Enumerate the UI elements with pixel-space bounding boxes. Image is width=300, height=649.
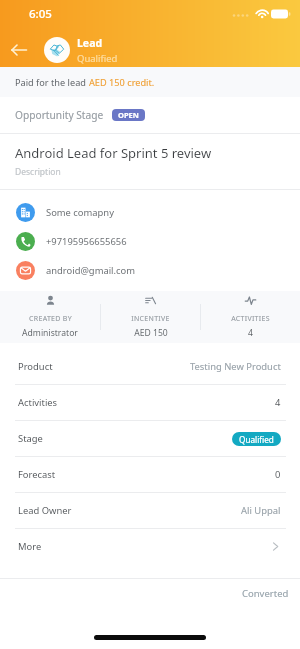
staticText: 4: [248, 327, 253, 339]
staticText: Testing New Product: [190, 360, 281, 373]
staticText: 4: [275, 396, 281, 409]
staticText: Some comapny: [46, 206, 114, 219]
button[interactable]: android@gmail.com: [0, 256, 300, 285]
staticText: Description: [15, 166, 61, 178]
button[interactable]: CREATED BY: [0, 291, 100, 343]
staticText: ACTIVITIES: [231, 314, 270, 324]
staticText: Android Lead for Sprint 5 review: [15, 144, 212, 162]
staticText: Ali Uppal: [241, 504, 281, 517]
staticText: Qualified: [77, 52, 118, 65]
button[interactable]: +97195956655656: [0, 227, 300, 256]
staticText: Lead Owner: [18, 504, 72, 517]
staticText: Stage: [18, 432, 43, 445]
button[interactable]: Product: [0, 349, 300, 384]
staticText: android@gmail.com: [46, 264, 136, 277]
button[interactable]: Activities: [0, 385, 300, 420]
staticText: Paid for the lead: [15, 76, 89, 89]
staticText: Forecast: [18, 468, 56, 481]
staticText: +97195956655656: [46, 235, 127, 248]
button[interactable]: Forecast: [0, 457, 300, 492]
staticText: Administrator: [22, 327, 78, 339]
button[interactable]: Converted: [242, 587, 289, 600]
staticText: OPEN: [118, 110, 139, 120]
staticText: Opportunity Stage: [15, 108, 104, 122]
staticText: 6:05: [29, 6, 52, 22]
button[interactable]: More: [0, 529, 300, 564]
other: Expand: [270, 541, 281, 552]
staticText: Lead: [77, 36, 103, 50]
staticText: AED 150: [134, 327, 168, 339]
button[interactable]: ACTIVITIES: [201, 291, 300, 343]
staticText: Activities: [18, 396, 58, 409]
staticText: INCENTIVE: [131, 314, 170, 324]
button[interactable]: Stage: [0, 421, 300, 456]
staticText: More: [18, 540, 42, 553]
staticText: Qualified: [239, 434, 274, 445]
staticText: Product: [18, 360, 53, 373]
button[interactable]: Lead Owner: [0, 493, 300, 528]
button[interactable]: Some comapny: [0, 198, 300, 227]
staticText: 0: [275, 468, 281, 481]
staticText: AED 150 credit.: [89, 76, 155, 89]
button[interactable]: Back: [5, 36, 33, 64]
staticText: CREATED BY: [29, 314, 72, 324]
button[interactable]: INCENTIVE: [101, 291, 200, 343]
